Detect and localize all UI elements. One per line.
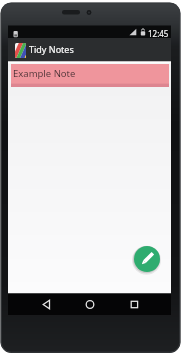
staticText: Example Note <box>13 67 76 80</box>
button[interactable] <box>32 295 60 314</box>
button[interactable] <box>76 295 104 314</box>
button[interactable]: Example Note <box>11 64 169 87</box>
button[interactable] <box>120 295 148 314</box>
staticText: Tidy Notes <box>29 43 74 55</box>
button[interactable] <box>134 246 160 272</box>
staticText: 12:45 <box>148 28 169 39</box>
